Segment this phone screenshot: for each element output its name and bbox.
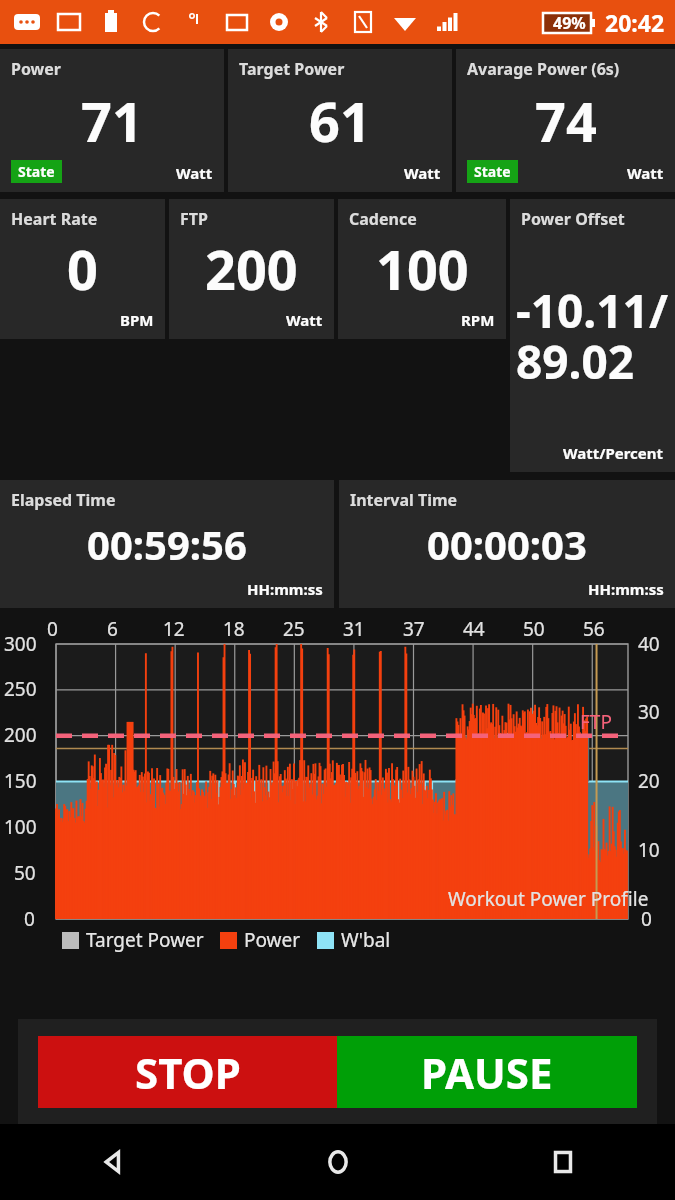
staticText: Heart Rate [11,208,98,230]
staticText: 37 [403,616,425,642]
button[interactable]: FTP [169,199,334,339]
button[interactable]: Back [0,1124,225,1200]
button[interactable]: Recent apps [450,1124,675,1200]
staticText: 71 [81,84,143,158]
staticText: Watt [176,163,213,183]
staticText: Target Power [86,927,204,953]
staticText: 61 [309,84,371,158]
staticText: STOP [135,1044,241,1101]
staticText: W'bal [341,927,391,953]
staticText: FTP [180,208,208,230]
staticText: Watt [404,163,441,183]
staticText: 18 [223,616,245,642]
staticText: FTP [580,709,612,735]
staticText: HH:mm:ss [247,579,323,599]
button[interactable]: Elapsed Time [0,480,334,608]
button[interactable]: Cadence [338,199,506,339]
staticText: 20 [638,768,660,794]
staticText: 30 [638,699,660,725]
staticText: 12 [163,616,185,642]
staticText: 20:42 [605,7,665,38]
staticText: Watt [286,310,323,330]
staticText: BPM [120,310,154,330]
button[interactable]: STOP [38,1036,337,1108]
button[interactable]: State [18,162,55,181]
staticText: 0 [47,616,58,642]
staticText: State [18,162,55,181]
staticText: 6 [107,616,118,642]
staticText: 56 [583,616,605,642]
staticText: State [474,162,511,181]
button[interactable]: Power [0,49,224,192]
staticText: 31 [343,616,365,642]
staticText: Elapsed Time [11,489,116,511]
staticText: 49% [553,12,586,34]
staticText: Cadence [349,208,417,230]
staticText: 50 [14,860,36,886]
staticText: 10 [638,837,660,863]
staticText: PAUSE [421,1044,553,1101]
staticText: Power Offset [521,208,625,230]
staticText: 50 [523,616,545,642]
button[interactable]: Avarage Power (6s) [456,49,675,192]
staticText: Avarage Power (6s) [467,58,620,80]
staticText: 200 [4,722,37,748]
button[interactable]: State [474,162,511,181]
button[interactable]: Target Power [228,49,452,192]
button[interactable]: Power Offset [510,199,675,472]
staticText: 100 [4,814,37,840]
staticText: Interval Time [350,489,458,511]
staticText: 300 [4,631,37,657]
staticText: Power [11,58,62,80]
staticText: 25 [283,616,305,642]
button[interactable]: Heart Rate [0,199,165,339]
staticText: 250 [4,676,37,702]
staticText: 00:59:56 [87,517,247,571]
staticText: -10.11/89.02 [516,279,669,393]
staticText: HH:mm:ss [588,579,664,599]
staticText: 00:00:03 [427,517,587,571]
staticText: Power [244,927,301,953]
button[interactable]: Interval Time [339,480,675,608]
staticText: 100 [376,232,469,306]
staticText: 0 [67,232,98,306]
staticText: 40 [638,631,660,657]
staticText: 200 [205,232,298,306]
staticText: 0 [24,906,35,932]
staticText: 44 [463,616,485,642]
button[interactable]: PAUSE [337,1036,637,1108]
staticText: RPM [461,310,495,330]
staticText: 0 [641,906,652,932]
button[interactable]: Home [225,1124,450,1200]
staticText: Watt/Percent [563,443,664,463]
staticText: Target Power [239,58,345,80]
staticText: Watt [627,163,664,183]
staticText: 74 [535,84,597,158]
staticText: Workout Power Profile [448,886,649,912]
staticText: 150 [4,768,37,794]
